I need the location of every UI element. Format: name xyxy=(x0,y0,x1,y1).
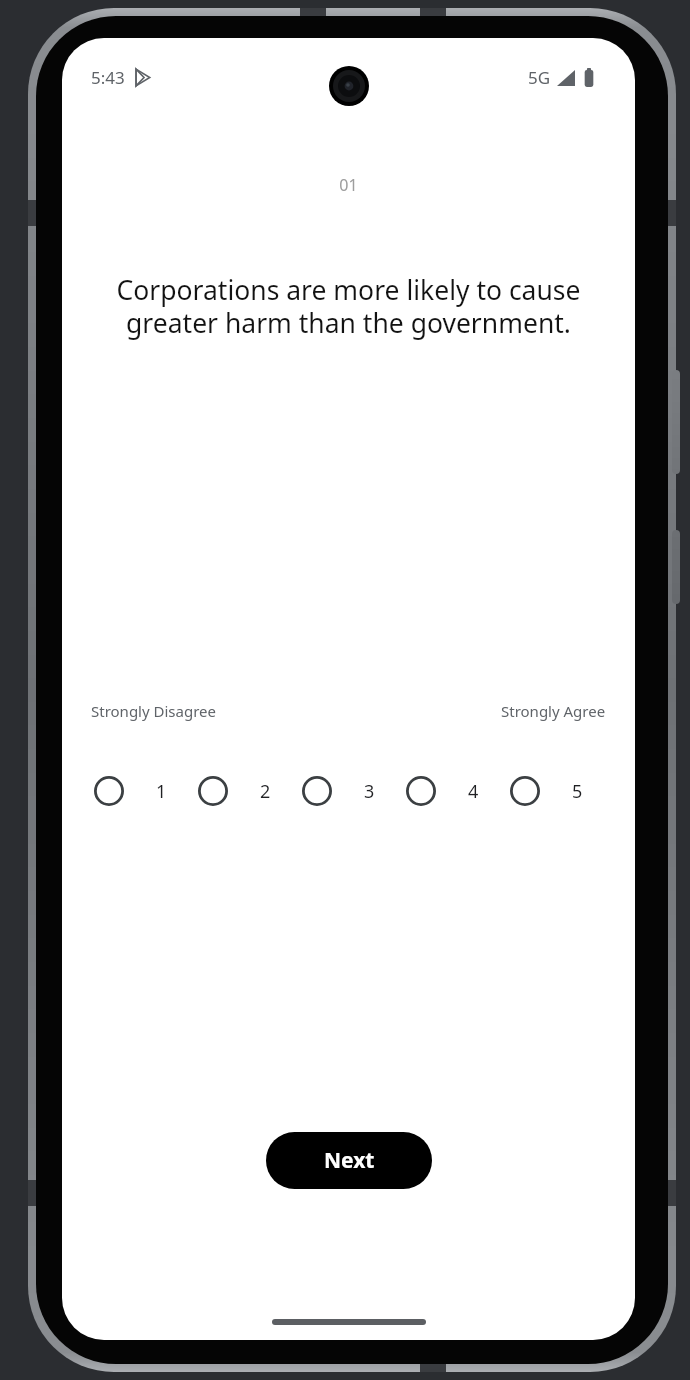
staticText: 1 xyxy=(156,779,167,804)
button[interactable]: Rating 3 xyxy=(294,768,340,814)
staticText: 2 xyxy=(260,779,271,804)
button[interactable]: Rating 4 xyxy=(398,768,444,814)
staticText: 5G xyxy=(528,66,551,89)
staticText: Next xyxy=(324,1146,375,1175)
button[interactable]: Rating 2 xyxy=(190,768,236,814)
staticText: 3 xyxy=(364,779,375,804)
staticText: Strongly Disagree xyxy=(91,701,216,721)
staticText: 01 xyxy=(62,174,635,196)
button[interactable]: Next xyxy=(266,1132,432,1189)
button[interactable]: Rating 5 xyxy=(502,768,548,814)
button[interactable]: Rating 1 xyxy=(86,768,132,814)
staticText: 5:43 xyxy=(91,66,125,89)
staticText: Strongly Agree xyxy=(501,701,606,721)
staticText: 4 xyxy=(468,779,479,804)
staticText: 5 xyxy=(572,779,583,804)
staticText: Corporations are more likely to cause gr… xyxy=(86,272,611,341)
